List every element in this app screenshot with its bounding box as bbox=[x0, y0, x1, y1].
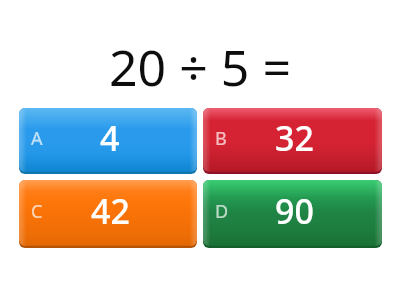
button[interactable]: B bbox=[203, 108, 382, 174]
staticText: 4 bbox=[100, 115, 120, 161]
staticText: A bbox=[31, 126, 43, 151]
staticText: 42 bbox=[91, 188, 130, 234]
staticText: D bbox=[215, 199, 229, 224]
staticText: B bbox=[215, 126, 227, 151]
staticText: 20 ÷ 5 = bbox=[109, 33, 291, 101]
button[interactable]: C bbox=[19, 180, 197, 248]
staticText: 90 bbox=[275, 188, 314, 234]
staticText: 32 bbox=[275, 115, 314, 161]
button[interactable]: D bbox=[203, 180, 382, 248]
staticText: C bbox=[31, 199, 43, 224]
button[interactable]: A bbox=[19, 108, 197, 174]
